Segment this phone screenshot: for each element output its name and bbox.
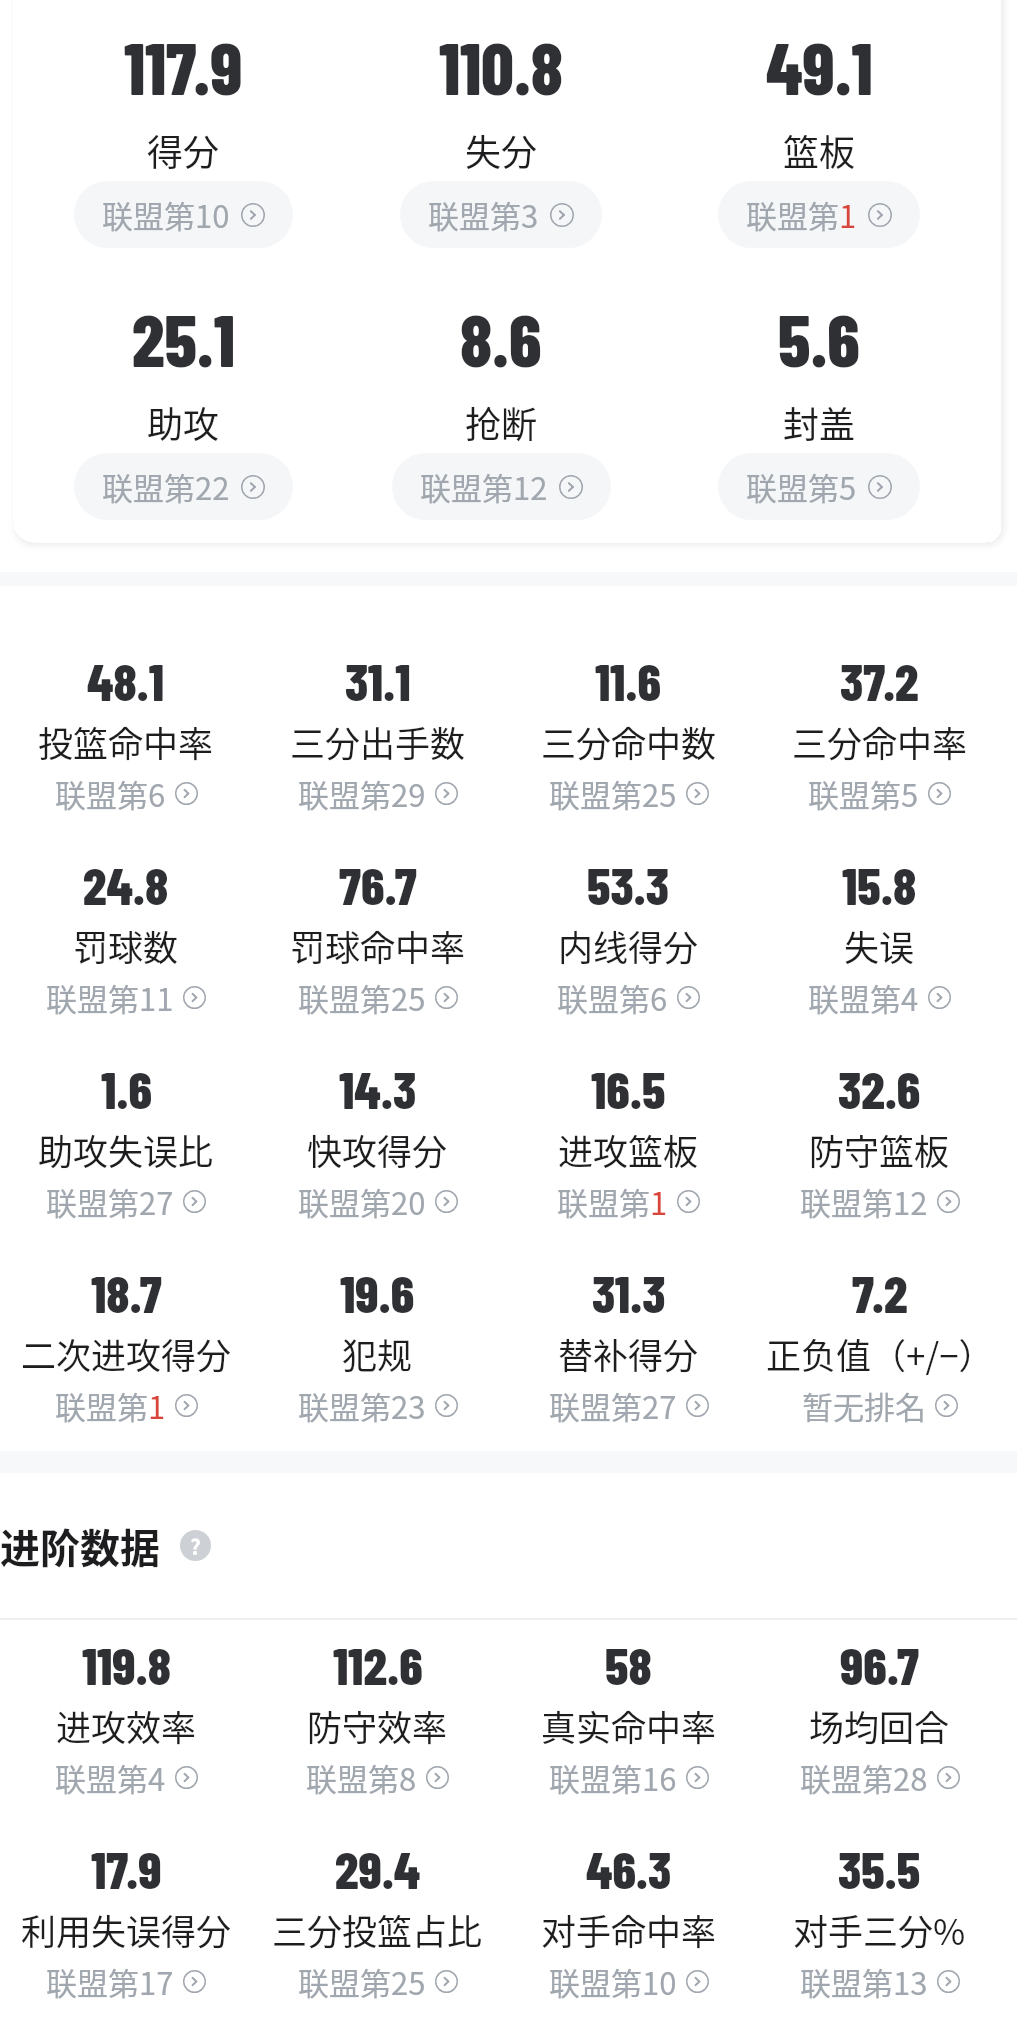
button[interactable]: 25.1 [25, 318, 342, 548]
staticText: 联盟第25 [549, 771, 677, 816]
staticText: 联盟第27 [46, 1179, 174, 1224]
staticText: 暂无排名 [802, 1383, 926, 1428]
staticText: 防守篮板 [809, 1124, 950, 1175]
staticText: 1.6 [101, 1057, 152, 1119]
staticText: 三分命中数 [541, 716, 717, 767]
staticText: 112.6 [333, 1633, 423, 1695]
button[interactable]: 110.8 [342, 46, 660, 276]
staticText: 内线得分 [558, 920, 699, 971]
button[interactable]: 58 [503, 1650, 754, 1854]
staticText: 96.7 [840, 1633, 919, 1695]
staticText: 封盖 [783, 396, 856, 448]
staticText: 联盟第23 [298, 1383, 426, 1428]
staticText: 抢断 [465, 396, 538, 448]
staticText: 15.8 [842, 853, 917, 915]
button[interactable]: 19.6 [252, 1278, 503, 1451]
button[interactable]: 8.6 [342, 318, 660, 548]
staticText: 失分 [465, 124, 538, 176]
staticText: 19.6 [340, 1261, 415, 1323]
staticText: 正负值（+/−） [766, 1328, 994, 1379]
button[interactable]: 32.6 [754, 1074, 1005, 1278]
button[interactable]: 联盟第10 [74, 181, 293, 248]
staticText: 失误 [844, 920, 915, 971]
button[interactable]: 117.9 [25, 46, 342, 276]
staticText: 37.2 [840, 649, 919, 711]
button[interactable]: 76.7 [252, 870, 503, 1074]
button[interactable]: 53.3 [503, 870, 754, 1074]
button[interactable]: 112.6 [252, 1650, 503, 1854]
staticText: 31.1 [345, 649, 411, 711]
staticText: 联盟第5 [746, 464, 857, 509]
staticText: 犯规 [342, 1328, 413, 1379]
button[interactable]: 24.8 [0, 870, 252, 1074]
staticText: 三分出手数 [290, 716, 466, 767]
staticText: 31.3 [592, 1261, 666, 1323]
staticText: 联盟第25 [298, 975, 426, 1020]
staticText: 场均回合 [809, 1700, 950, 1751]
button[interactable]: 16.5 [503, 1074, 754, 1278]
staticText: 32.6 [838, 1057, 921, 1119]
staticText: 替补得分 [558, 1328, 699, 1379]
button[interactable]: 联盟第5 [718, 453, 920, 520]
staticText: 117.9 [124, 23, 243, 109]
button[interactable]: 17.9 [0, 1854, 252, 2022]
staticText: 联盟第5 [808, 771, 919, 816]
staticText: 联盟第6 [557, 975, 668, 1020]
staticText: 48.1 [87, 649, 165, 711]
button[interactable]: 联盟第3 [400, 181, 602, 248]
staticText: 联盟第8 [306, 1755, 417, 1800]
button[interactable]: 11.6 [503, 666, 754, 870]
button[interactable]: 119.8 [0, 1650, 252, 1854]
button[interactable]: 帮助 [180, 1530, 211, 1561]
staticText: 17.9 [91, 1837, 162, 1899]
button[interactable]: 31.3 [503, 1278, 754, 1451]
button[interactable]: 35.5 [754, 1854, 1005, 2022]
staticText: 联盟第4 [55, 1755, 166, 1800]
staticText: 联盟第1 [557, 1179, 668, 1224]
button[interactable]: 联盟第1 [718, 181, 920, 248]
button[interactable]: 联盟第12 [392, 453, 611, 520]
staticText: 快攻得分 [307, 1124, 448, 1175]
staticText: 8.6 [460, 295, 542, 381]
staticText: 14.3 [339, 1057, 417, 1119]
button[interactable]: 14.3 [252, 1074, 503, 1278]
staticText: 防守效率 [307, 1700, 448, 1751]
staticText: 24.8 [83, 853, 169, 915]
staticText: 助攻 [147, 396, 220, 448]
staticText: 三分命中率 [792, 716, 968, 767]
button[interactable]: 1.6 [0, 1074, 252, 1278]
staticText: 联盟第20 [298, 1179, 426, 1224]
button[interactable]: 联盟第22 [74, 453, 293, 520]
button[interactable]: 15.8 [754, 870, 1005, 1074]
staticText: 5.6 [778, 295, 860, 381]
staticText: 篮板 [783, 124, 856, 176]
staticText: 对手命中率 [541, 1904, 717, 1955]
button[interactable]: 37.2 [754, 666, 1005, 870]
staticText: 罚球命中率 [290, 920, 466, 971]
button[interactable]: 5.6 [660, 318, 978, 548]
staticText: 联盟第28 [800, 1755, 928, 1800]
staticText: 进攻篮板 [558, 1124, 699, 1175]
staticText: 16.5 [591, 1057, 666, 1119]
staticText: 联盟第6 [55, 771, 166, 816]
button[interactable]: 7.2 [754, 1278, 1005, 1451]
staticText: 联盟第13 [800, 1959, 928, 2004]
staticText: 联盟第29 [298, 771, 426, 816]
staticText: 三分投篮占比 [272, 1904, 483, 1955]
staticText: 110.8 [439, 23, 563, 109]
staticText: 联盟第12 [800, 1179, 928, 1224]
staticText: 得分 [147, 124, 220, 176]
staticText: 46.3 [586, 1837, 672, 1899]
button[interactable]: 29.4 [252, 1854, 503, 2022]
button[interactable]: 46.3 [503, 1854, 754, 2022]
button[interactable]: 18.7 [0, 1278, 252, 1451]
staticText: 联盟第27 [549, 1383, 677, 1428]
staticText: 联盟第25 [298, 1959, 426, 2004]
staticText: 联盟第10 [102, 192, 230, 237]
staticText: 联盟第16 [549, 1755, 677, 1800]
button[interactable]: 49.1 [660, 46, 978, 276]
staticText: 助攻失误比 [38, 1124, 214, 1175]
button[interactable]: 48.1 [0, 666, 252, 870]
button[interactable]: 31.1 [252, 666, 503, 870]
button[interactable]: 96.7 [754, 1650, 1005, 1854]
